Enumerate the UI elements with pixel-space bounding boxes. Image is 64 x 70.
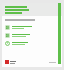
button[interactable]: Info item — [5, 41, 59, 46]
other: Info item — [5, 41, 10, 46]
button[interactable]: Document item — [5, 33, 59, 38]
other: Document item — [5, 25, 10, 30]
other: Document item — [5, 33, 10, 38]
button[interactable]: Document item — [5, 25, 59, 30]
